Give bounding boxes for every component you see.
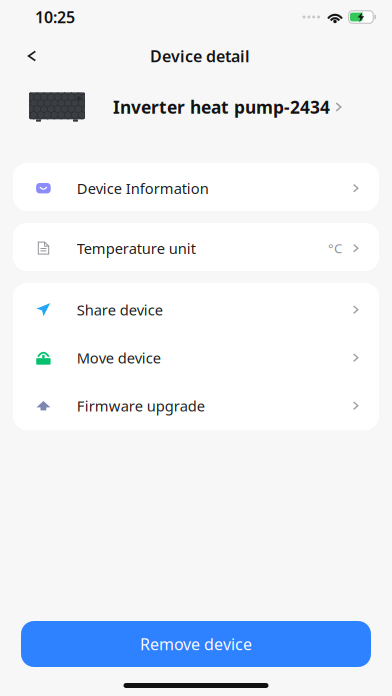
button[interactable]: Firmware upgrade <box>13 380 379 428</box>
button[interactable]: Back <box>10 34 54 78</box>
staticText: Temperature unit <box>77 238 196 258</box>
staticText: 10:25 <box>35 6 75 28</box>
staticText: Remove device <box>140 633 252 655</box>
staticText: Share device <box>77 300 163 319</box>
button[interactable]: Share device <box>13 284 379 332</box>
button[interactable]: Move device <box>13 332 379 380</box>
staticText: Inverter heat pump-2434 <box>113 95 330 118</box>
button[interactable]: Temperature unit <box>13 223 379 271</box>
staticText: °C <box>328 239 342 257</box>
staticText: Device detail <box>150 45 250 67</box>
button[interactable]: Device Information <box>13 163 379 211</box>
staticText: Firmware upgrade <box>77 396 205 415</box>
staticText: Device Information <box>77 178 209 198</box>
button[interactable]: Remove device <box>21 621 371 667</box>
button[interactable]: Inverter heat pump-2434 <box>0 86 392 128</box>
staticText: Move device <box>77 348 161 367</box>
